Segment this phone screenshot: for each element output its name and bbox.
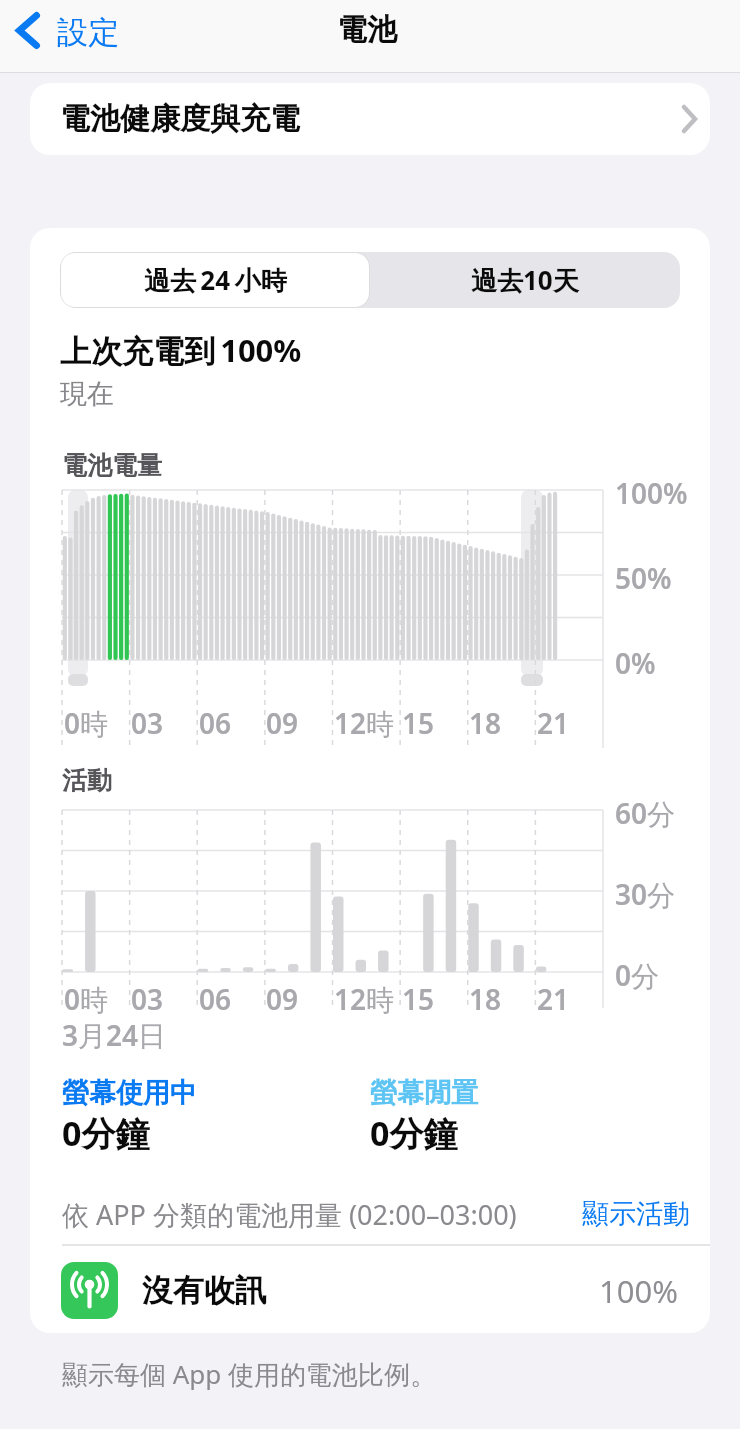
staticText: 過去 24 小時 bbox=[144, 262, 287, 298]
staticText: 現在 bbox=[60, 377, 114, 411]
staticText: 06 bbox=[199, 980, 232, 1018]
button[interactable]: 過去 24 小時 bbox=[60, 252, 370, 308]
staticText: 0分鐘 bbox=[370, 1110, 458, 1156]
staticText: 3月24日 bbox=[62, 1016, 167, 1054]
staticText: 設定 bbox=[57, 13, 119, 52]
staticText: 09 bbox=[266, 980, 299, 1018]
staticText: 60分 bbox=[615, 794, 676, 832]
button[interactable]: 設定 bbox=[8, 4, 119, 60]
staticText: 09 bbox=[266, 704, 299, 742]
staticText: 電池 bbox=[337, 11, 397, 49]
button[interactable]: 過去10天 bbox=[370, 252, 680, 308]
staticText: 0時 bbox=[64, 980, 109, 1018]
staticText: 電池電量 bbox=[62, 450, 162, 481]
staticText: 0% bbox=[615, 644, 656, 682]
staticText: 過去10天 bbox=[471, 262, 579, 298]
staticText: 50% bbox=[615, 559, 672, 597]
staticText: 上次充電到 100% bbox=[60, 329, 302, 371]
staticText: 依 APP 分類的電池用量 (02:00–03:00) bbox=[62, 1196, 517, 1233]
staticText: 12時 bbox=[334, 980, 395, 1018]
staticText: 0分 bbox=[615, 956, 660, 994]
staticText: 15 bbox=[402, 980, 435, 1018]
staticText: 螢幕閒置 bbox=[370, 1076, 478, 1110]
staticText: 沒有收訊 bbox=[142, 1271, 266, 1310]
staticText: 0時 bbox=[64, 704, 109, 742]
staticText: 顯示活動 bbox=[582, 1197, 690, 1231]
button[interactable]: 電池健康度與充電 bbox=[30, 83, 710, 155]
staticText: 03 bbox=[131, 704, 164, 742]
staticText: 15 bbox=[402, 704, 435, 742]
staticText: 21 bbox=[537, 704, 570, 742]
staticText: 顯示每個 App 使用的電池比例。 bbox=[62, 1356, 437, 1392]
staticText: 電池健康度與充電 bbox=[60, 100, 300, 138]
staticText: 18 bbox=[469, 704, 502, 742]
staticText: 03 bbox=[131, 980, 164, 1018]
staticText: 螢幕使用中 bbox=[62, 1076, 197, 1110]
staticText: 12時 bbox=[334, 704, 395, 742]
staticText: 活動 bbox=[62, 765, 112, 796]
staticText: 100% bbox=[599, 1270, 678, 1312]
staticText: 06 bbox=[199, 704, 232, 742]
button[interactable]: 顯示活動 bbox=[570, 1192, 690, 1236]
staticText: 30分 bbox=[615, 875, 676, 913]
staticText: 21 bbox=[537, 980, 570, 1018]
staticText: 0分鐘 bbox=[62, 1110, 150, 1156]
button[interactable]: 沒有收訊 bbox=[30, 1248, 710, 1333]
staticText: 100% bbox=[615, 474, 688, 512]
staticText: 18 bbox=[469, 980, 502, 1018]
